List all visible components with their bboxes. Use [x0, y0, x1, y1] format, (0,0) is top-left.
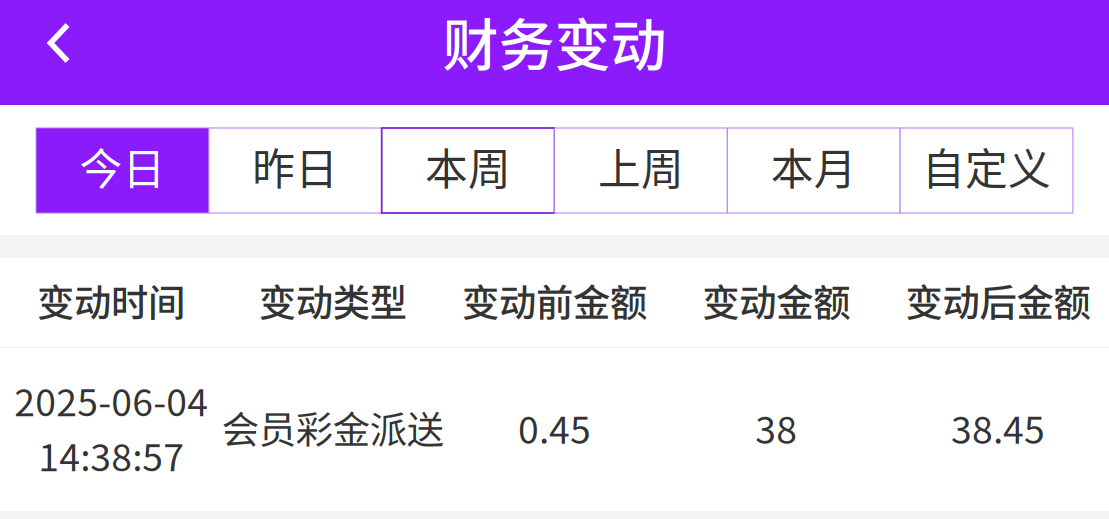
staticText: 上周 [598, 136, 684, 197]
staticText: 38.45 [951, 400, 1045, 455]
button[interactable]: Back [27, 0, 91, 86]
button[interactable]: 本月 [727, 128, 900, 213]
staticText: 变动时间 [37, 273, 185, 328]
staticText: 本月 [771, 136, 857, 197]
staticText: 2025-06-04 14:38:57 [14, 373, 208, 482]
staticText: 今日 [79, 136, 165, 197]
staticText: 财务变动 [442, 0, 666, 82]
staticText: 会员彩金派送 [222, 400, 444, 455]
staticText: 昨日 [252, 136, 338, 197]
button[interactable]: 昨日 [209, 128, 382, 213]
button[interactable]: 今日 [36, 128, 209, 213]
staticText: 变动类型 [259, 273, 407, 328]
button[interactable]: 自定义 [900, 128, 1073, 213]
staticText: 38 [755, 400, 797, 455]
staticText: 自定义 [922, 136, 1051, 197]
staticText: 变动前金额 [462, 273, 647, 328]
button[interactable]: 本周 [382, 128, 554, 213]
staticText: 0.45 [518, 400, 591, 455]
button[interactable]: 上周 [554, 128, 727, 213]
staticText: 变动后金额 [906, 273, 1091, 328]
staticText: 本周 [425, 136, 511, 197]
staticText: 变动金额 [702, 273, 850, 328]
